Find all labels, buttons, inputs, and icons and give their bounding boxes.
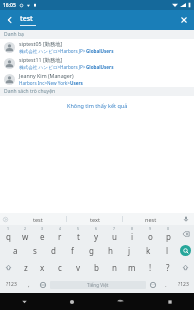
staticText: test bbox=[20, 14, 33, 24]
button[interactable]: Key bbox=[177, 225, 194, 242]
button[interactable]: h bbox=[101, 242, 120, 259]
staticText: c bbox=[58, 262, 62, 273]
staticText: 1 bbox=[7, 226, 10, 231]
button[interactable]: v bbox=[69, 259, 87, 276]
staticText: o bbox=[148, 231, 153, 242]
staticText: a bbox=[13, 245, 18, 256]
staticText: Danh bạ bbox=[4, 31, 24, 38]
staticText: Users bbox=[70, 80, 83, 86]
staticText: d bbox=[51, 245, 56, 256]
staticText: x bbox=[40, 262, 45, 273]
staticText: j bbox=[128, 245, 131, 256]
button[interactable]: siptest05 [勤務地] bbox=[0, 39, 194, 55]
staticText: ?123 bbox=[6, 281, 17, 288]
button[interactable]: 9 bbox=[141, 225, 159, 242]
button[interactable]: n bbox=[105, 259, 123, 276]
button[interactable]: , bbox=[22, 276, 36, 293]
staticText: 株式会社 ハンビロ>Harbors JP> bbox=[19, 64, 86, 70]
button[interactable]: g bbox=[82, 242, 101, 259]
button[interactable]: 6 bbox=[87, 225, 105, 242]
button[interactable]: 4 bbox=[51, 225, 69, 242]
staticText: 7 bbox=[113, 226, 116, 231]
button[interactable]: k bbox=[139, 242, 158, 259]
button[interactable]: f bbox=[63, 242, 82, 259]
button[interactable]: Expand suggestions bbox=[0, 213, 10, 225]
staticText: 5 bbox=[77, 226, 80, 231]
button[interactable]: Voice input bbox=[178, 213, 194, 225]
button[interactable]: 5 bbox=[69, 225, 87, 242]
button[interactable]: Key bbox=[177, 242, 194, 259]
staticText: l bbox=[166, 245, 169, 256]
staticText: f bbox=[71, 245, 74, 256]
button[interactable]: Hide keyboard bbox=[0, 293, 48, 310]
button[interactable]: c bbox=[51, 259, 69, 276]
staticText: , bbox=[28, 281, 30, 289]
staticText: . bbox=[165, 281, 167, 289]
staticText: g bbox=[89, 245, 94, 256]
staticText: Danh sách trò chuyện bbox=[4, 88, 56, 95]
button[interactable]: Clear search bbox=[174, 10, 194, 30]
button[interactable]: s bbox=[25, 242, 44, 259]
staticText: Tiếng Việt bbox=[87, 282, 109, 288]
button[interactable]: Jeanny Kim (Manager) bbox=[0, 71, 194, 87]
staticText: s bbox=[33, 245, 37, 256]
button[interactable]: text bbox=[67, 213, 122, 225]
staticText: ! bbox=[149, 262, 152, 273]
staticText: 8 bbox=[131, 226, 134, 231]
staticText: p bbox=[166, 231, 171, 242]
button[interactable]: 0 bbox=[159, 225, 177, 242]
button[interactable]: siptest11 [勤務地] bbox=[0, 55, 194, 71]
button[interactable]: 7 bbox=[105, 225, 123, 242]
staticText: h bbox=[108, 245, 113, 256]
button[interactable]: Emoji bbox=[146, 276, 160, 293]
button[interactable]: x bbox=[34, 259, 51, 276]
button[interactable]: b bbox=[87, 259, 105, 276]
button[interactable]: l bbox=[158, 242, 177, 259]
button[interactable]: ?123 bbox=[0, 276, 22, 293]
button[interactable]: j bbox=[120, 242, 139, 259]
button[interactable]: Shift bbox=[0, 259, 17, 276]
button[interactable]: Back bbox=[96, 293, 145, 310]
button[interactable]: 3 bbox=[34, 225, 51, 242]
staticText: GlobalUsers bbox=[86, 48, 114, 54]
staticText: siptest11 [勤務地] bbox=[19, 56, 63, 63]
staticText: w bbox=[22, 231, 29, 242]
button[interactable]: test bbox=[10, 213, 66, 225]
button[interactable]: m bbox=[123, 259, 141, 276]
button[interactable]: 1 bbox=[0, 225, 17, 242]
staticText: 0 bbox=[167, 226, 170, 231]
staticText: y bbox=[94, 231, 99, 242]
button[interactable]: Tiếng Việt bbox=[50, 281, 146, 289]
staticText: 9 bbox=[149, 226, 152, 231]
staticText: ?123 bbox=[178, 281, 189, 288]
staticText: t bbox=[77, 231, 80, 242]
staticText: b bbox=[94, 262, 99, 273]
staticText: n bbox=[112, 262, 117, 273]
button[interactable]: a bbox=[6, 242, 25, 259]
button[interactable]: ! bbox=[141, 259, 159, 276]
staticText: Harbors Inc>New York> bbox=[19, 80, 70, 86]
staticText: m bbox=[128, 262, 136, 273]
button[interactable]: Recent apps bbox=[145, 293, 194, 310]
staticText: GlobalUsers bbox=[86, 64, 114, 70]
button[interactable]: z bbox=[17, 259, 34, 276]
button[interactable]: 8 bbox=[123, 225, 141, 242]
staticText: 2 bbox=[24, 226, 27, 231]
button[interactable]: Key bbox=[177, 259, 194, 276]
staticText: nest bbox=[145, 216, 157, 223]
button[interactable]: 2 bbox=[17, 225, 34, 242]
button[interactable]: d bbox=[44, 242, 63, 259]
staticText: u bbox=[112, 231, 117, 242]
staticText: Không tìm thấy kết quả bbox=[67, 102, 128, 109]
button[interactable]: Back bbox=[0, 10, 20, 30]
button[interactable]: Change language bbox=[36, 276, 50, 293]
staticText: e bbox=[40, 231, 45, 242]
button[interactable]: . bbox=[160, 276, 172, 293]
button[interactable]: Home bbox=[48, 293, 96, 310]
staticText: text bbox=[90, 216, 100, 223]
button[interactable]: nest bbox=[123, 213, 178, 225]
staticText: Jeanny Kim (Manager) bbox=[19, 72, 74, 79]
button[interactable]: ? bbox=[159, 259, 177, 276]
staticText: test bbox=[33, 216, 43, 223]
button[interactable]: ?123 bbox=[172, 276, 194, 293]
